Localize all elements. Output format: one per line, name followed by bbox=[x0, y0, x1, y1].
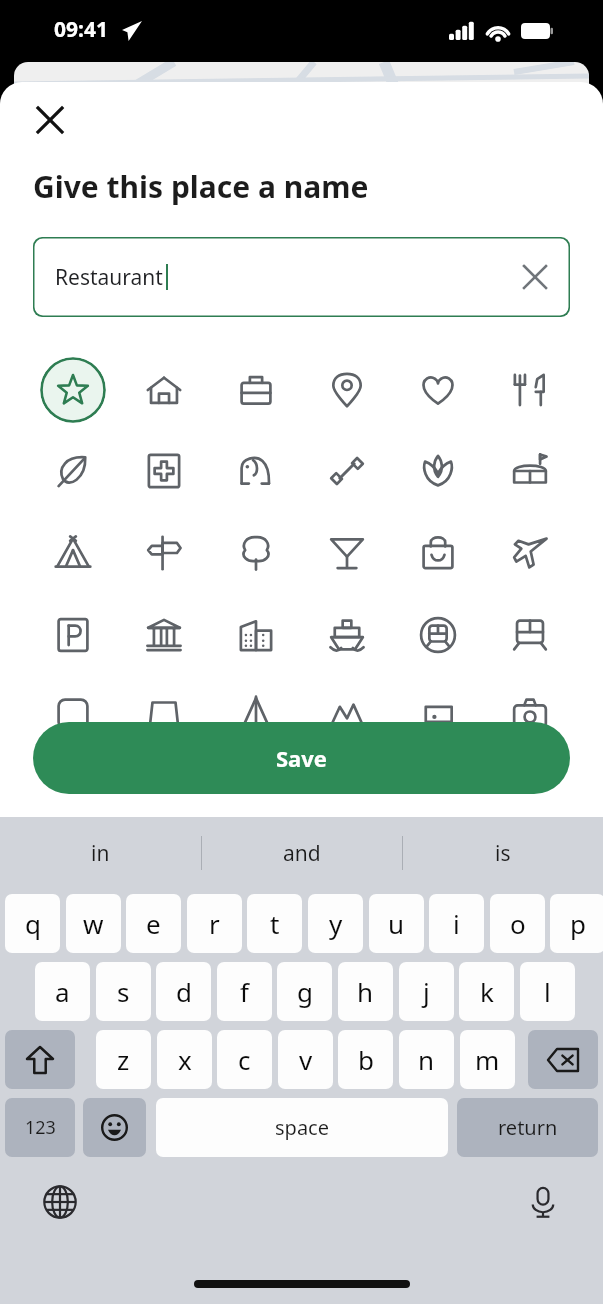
staticText: c bbox=[238, 1042, 251, 1077]
staticText: u bbox=[388, 906, 405, 941]
button[interactable]: Hospital bbox=[129, 436, 199, 506]
button[interactable]: x bbox=[157, 1030, 212, 1089]
button[interactable]: j bbox=[399, 962, 454, 1021]
button[interactable]: Close bbox=[26, 96, 74, 144]
staticText: g bbox=[297, 974, 313, 1009]
button[interactable]: and bbox=[202, 817, 402, 889]
button[interactable]: Museum bbox=[129, 600, 199, 670]
button[interactable]: l bbox=[520, 962, 575, 1021]
button[interactable]: b bbox=[338, 1030, 393, 1089]
button[interactable]: q bbox=[5, 894, 60, 953]
button[interactable]: Bed bbox=[38, 679, 108, 749]
button[interactable]: Emoji bbox=[83, 1098, 146, 1157]
button[interactable]: u bbox=[369, 894, 424, 953]
button[interactable]: Train bbox=[495, 600, 565, 670]
button[interactable]: i bbox=[429, 894, 484, 953]
button[interactable]: Restaurant bbox=[33, 237, 570, 317]
button[interactable]: Nature bbox=[38, 436, 108, 506]
button[interactable]: z bbox=[96, 1030, 151, 1089]
button[interactable]: Switch keyboard bbox=[32, 1174, 88, 1230]
button[interactable]: Work bbox=[221, 355, 291, 425]
button[interactable]: k bbox=[459, 962, 514, 1021]
staticText: b bbox=[358, 1042, 374, 1077]
button[interactable]: n bbox=[399, 1030, 454, 1089]
staticText: h bbox=[357, 974, 374, 1009]
button[interactable]: Office bbox=[221, 600, 291, 670]
button[interactable]: Golf bbox=[403, 679, 473, 749]
button[interactable]: d bbox=[156, 962, 211, 1021]
button[interactable]: Bar bbox=[312, 518, 382, 588]
button[interactable]: is bbox=[403, 817, 603, 889]
staticText: is bbox=[495, 839, 511, 868]
staticText: Give this place a name bbox=[33, 166, 369, 207]
staticText: m bbox=[475, 1042, 500, 1077]
staticText: 123 bbox=[25, 1115, 56, 1140]
staticText: l bbox=[544, 974, 551, 1009]
button[interactable]: Clear text bbox=[518, 260, 552, 294]
staticText: Restaurant bbox=[55, 263, 163, 292]
button[interactable]: Subway bbox=[403, 600, 473, 670]
button[interactable]: Camping bbox=[38, 518, 108, 588]
button[interactable]: y bbox=[308, 894, 363, 953]
button[interactable]: h bbox=[338, 962, 393, 1021]
button[interactable]: Airport bbox=[495, 518, 565, 588]
staticText: return bbox=[498, 1114, 558, 1141]
button[interactable]: a bbox=[35, 962, 90, 1021]
button[interactable]: r bbox=[187, 894, 242, 953]
staticText: w bbox=[83, 906, 104, 941]
button[interactable]: Photo bbox=[495, 679, 565, 749]
staticText: e bbox=[146, 906, 161, 941]
button[interactable]: Mountain bbox=[312, 679, 382, 749]
staticText: space bbox=[275, 1114, 329, 1141]
button[interactable]: Zoo bbox=[221, 436, 291, 506]
staticText: in bbox=[91, 839, 110, 868]
staticText: q bbox=[25, 906, 41, 941]
staticText: d bbox=[176, 974, 192, 1009]
staticText: s bbox=[117, 974, 130, 1009]
button[interactable]: Shopping bbox=[403, 518, 473, 588]
button[interactable]: Sofa bbox=[129, 679, 199, 749]
button[interactable]: Stadium bbox=[495, 436, 565, 506]
button[interactable]: return bbox=[457, 1098, 598, 1157]
staticText: n bbox=[418, 1042, 435, 1077]
staticText: k bbox=[480, 974, 494, 1009]
button[interactable]: Home bbox=[129, 355, 199, 425]
button[interactable]: g bbox=[277, 962, 332, 1021]
button[interactable]: t bbox=[247, 894, 302, 953]
button[interactable]: c bbox=[217, 1030, 272, 1089]
button[interactable]: Restaurant bbox=[495, 355, 565, 425]
button[interactable]: 123 bbox=[5, 1098, 75, 1157]
staticText: o bbox=[510, 906, 526, 941]
button[interactable]: e bbox=[126, 894, 181, 953]
staticText: j bbox=[423, 974, 430, 1009]
button[interactable]: Signpost bbox=[129, 518, 199, 588]
button[interactable]: Favorite bbox=[403, 355, 473, 425]
button[interactable]: f bbox=[217, 962, 272, 1021]
button[interactable]: Place bbox=[312, 355, 382, 425]
button[interactable]: Save bbox=[33, 722, 570, 794]
button[interactable]: Spa bbox=[403, 436, 473, 506]
button[interactable]: Dictation bbox=[515, 1174, 571, 1230]
button[interactable]: o bbox=[490, 894, 545, 953]
button[interactable]: Backspace bbox=[528, 1030, 598, 1089]
staticText: i bbox=[453, 906, 460, 941]
button[interactable]: in bbox=[0, 817, 201, 889]
button[interactable]: w bbox=[66, 894, 121, 953]
staticText: t bbox=[270, 906, 280, 941]
staticText: 09:41 bbox=[54, 15, 108, 44]
staticText: r bbox=[209, 906, 220, 941]
button[interactable]: Gym bbox=[312, 436, 382, 506]
button[interactable]: v bbox=[278, 1030, 333, 1089]
button[interactable]: p bbox=[550, 894, 603, 953]
button[interactable]: s bbox=[96, 962, 151, 1021]
button[interactable]: Parking bbox=[38, 600, 108, 670]
button[interactable]: Star bbox=[38, 355, 108, 425]
button[interactable]: m bbox=[460, 1030, 515, 1089]
button[interactable]: Park bbox=[221, 518, 291, 588]
staticText: a bbox=[55, 974, 70, 1009]
button[interactable]: Shift bbox=[5, 1030, 75, 1089]
staticText: z bbox=[117, 1042, 130, 1077]
button[interactable]: Bridge bbox=[221, 679, 291, 749]
button[interactable]: space bbox=[156, 1098, 448, 1157]
button[interactable]: Ferry bbox=[312, 600, 382, 670]
